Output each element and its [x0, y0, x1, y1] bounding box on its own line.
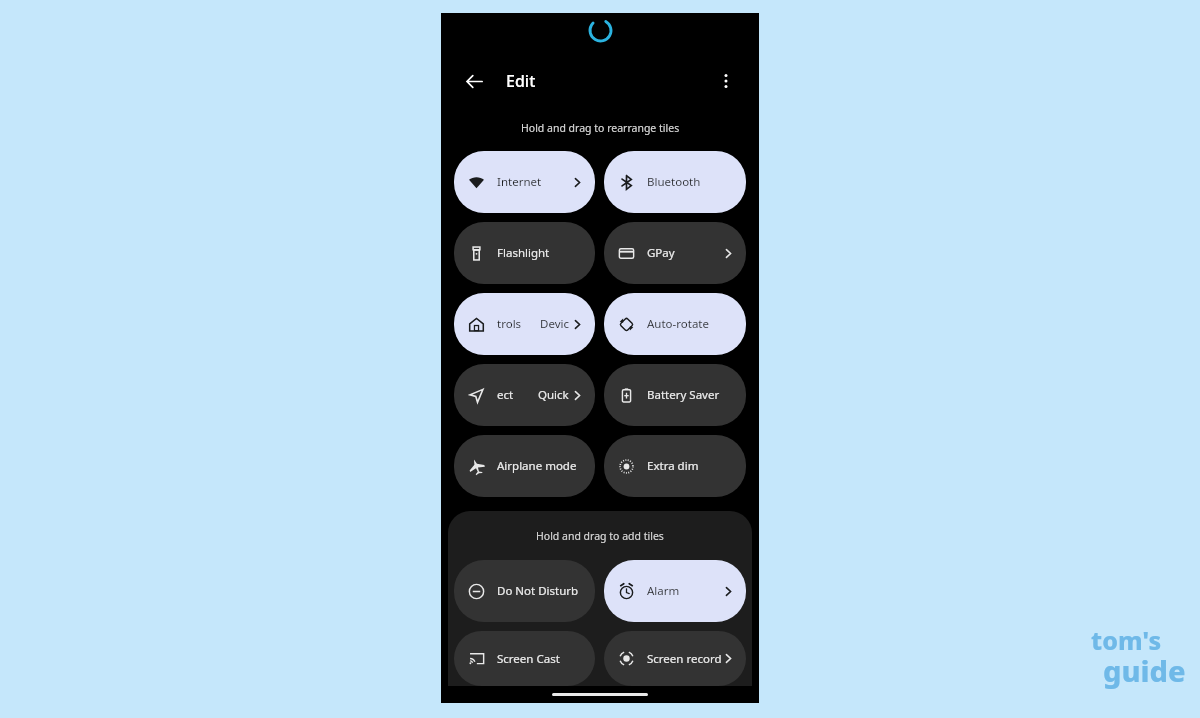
staticText: tom's: [1091, 623, 1162, 657]
staticText: Hold and drag to rearrange tiles: [521, 121, 680, 135]
staticText: Hold and drag to add tiles: [536, 529, 664, 543]
staticText: Screen record: [647, 651, 722, 667]
button[interactable]: trols: [454, 293, 595, 355]
button[interactable]: Screen record: [604, 631, 746, 686]
button[interactable]: Extra dim: [604, 435, 746, 497]
button[interactable]: Battery Saver: [604, 364, 746, 426]
staticText: Internet: [497, 174, 571, 190]
staticText: ect: [497, 387, 514, 403]
staticText: trols: [497, 316, 522, 332]
button[interactable]: Back: [460, 67, 488, 95]
staticText: Airplane mode: [497, 458, 584, 474]
button[interactable]: GPay: [604, 222, 746, 284]
staticText: Alarm: [647, 583, 722, 599]
button[interactable]: Alarm: [604, 560, 746, 622]
staticText: guide: [1103, 651, 1186, 690]
staticText: Bluetooth: [647, 174, 735, 190]
staticText: Do Not Disturb: [497, 583, 584, 599]
staticText: Battery Saver: [647, 387, 735, 403]
staticText: Devic: [540, 316, 569, 332]
staticText: GPay: [647, 245, 722, 261]
button[interactable]: Bluetooth: [604, 151, 746, 213]
button[interactable]: Do Not Disturb: [454, 560, 595, 622]
staticText: Edit: [506, 70, 536, 92]
button[interactable]: More options: [712, 67, 740, 95]
staticText: Flashlight: [497, 245, 584, 261]
staticText: Auto-rotate: [647, 316, 735, 332]
staticText: Extra dim: [647, 458, 735, 474]
staticText: Quick: [538, 387, 569, 403]
button[interactable]: Airplane mode: [454, 435, 595, 497]
button[interactable]: Screen Cast: [454, 631, 595, 686]
button[interactable]: Flashlight: [454, 222, 595, 284]
button[interactable]: Auto-rotate: [604, 293, 746, 355]
button[interactable]: ect: [454, 364, 595, 426]
staticText: Screen Cast: [497, 651, 584, 667]
button[interactable]: Internet: [454, 151, 595, 213]
